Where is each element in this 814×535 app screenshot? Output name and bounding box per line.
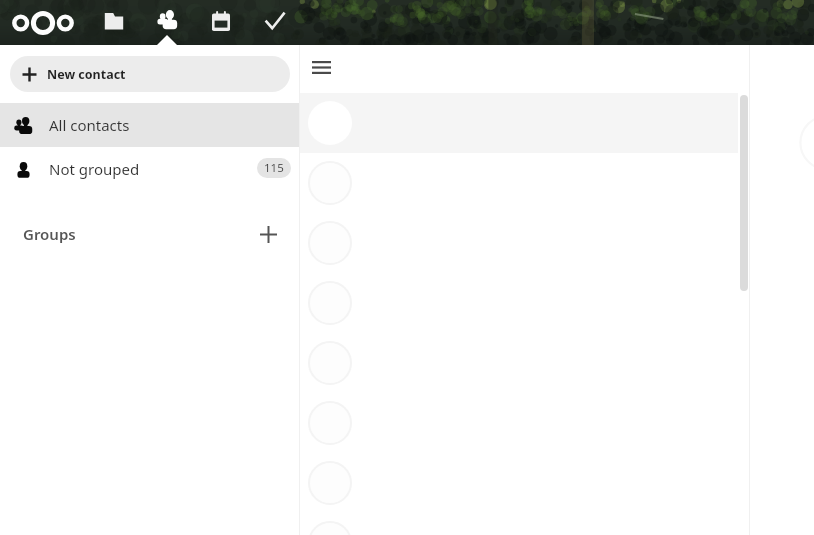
button[interactable]: Not grouped (0, 147, 300, 191)
button[interactable]: Tasks (252, 0, 298, 45)
staticText: Not grouped (49, 159, 140, 179)
staticText: All contacts (49, 115, 130, 135)
staticText: 115 (264, 160, 284, 176)
button[interactable]: Files (91, 0, 137, 45)
button[interactable]: New contact (10, 56, 290, 92)
button[interactable]: Calendar (198, 0, 244, 45)
button[interactable]: Add group (254, 220, 282, 248)
button[interactable]: Nextcloud home (4, 0, 82, 45)
button[interactable]: Contacts (144, 0, 190, 45)
staticText: New contact (47, 66, 126, 83)
staticText: Groups (23, 224, 76, 244)
button[interactable]: Menu (305, 51, 337, 83)
button[interactable]: All contacts (0, 103, 300, 147)
